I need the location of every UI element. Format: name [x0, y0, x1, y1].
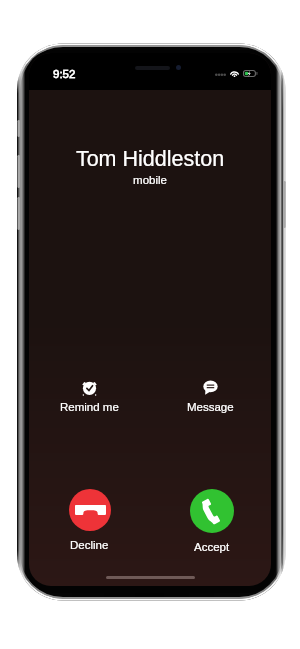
button[interactable]: Decline — [49, 489, 130, 552]
other: Remind me — [82, 380, 97, 395]
staticText: Accept — [194, 541, 230, 554]
staticText: 9:52 — [53, 68, 76, 81]
staticText: Message — [187, 401, 234, 414]
other: Decline — [75, 505, 106, 515]
button[interactable]: Message — [170, 380, 251, 414]
button[interactable]: Accept — [171, 489, 252, 554]
button[interactable]: Remind me — [49, 380, 130, 414]
staticText: Tom Hiddleston — [29, 147, 271, 171]
staticText: mobile — [29, 174, 271, 187]
staticText: Remind me — [60, 401, 119, 414]
other: Accept — [197, 496, 227, 526]
other: Message — [203, 380, 218, 395]
staticText: Decline — [70, 539, 109, 552]
